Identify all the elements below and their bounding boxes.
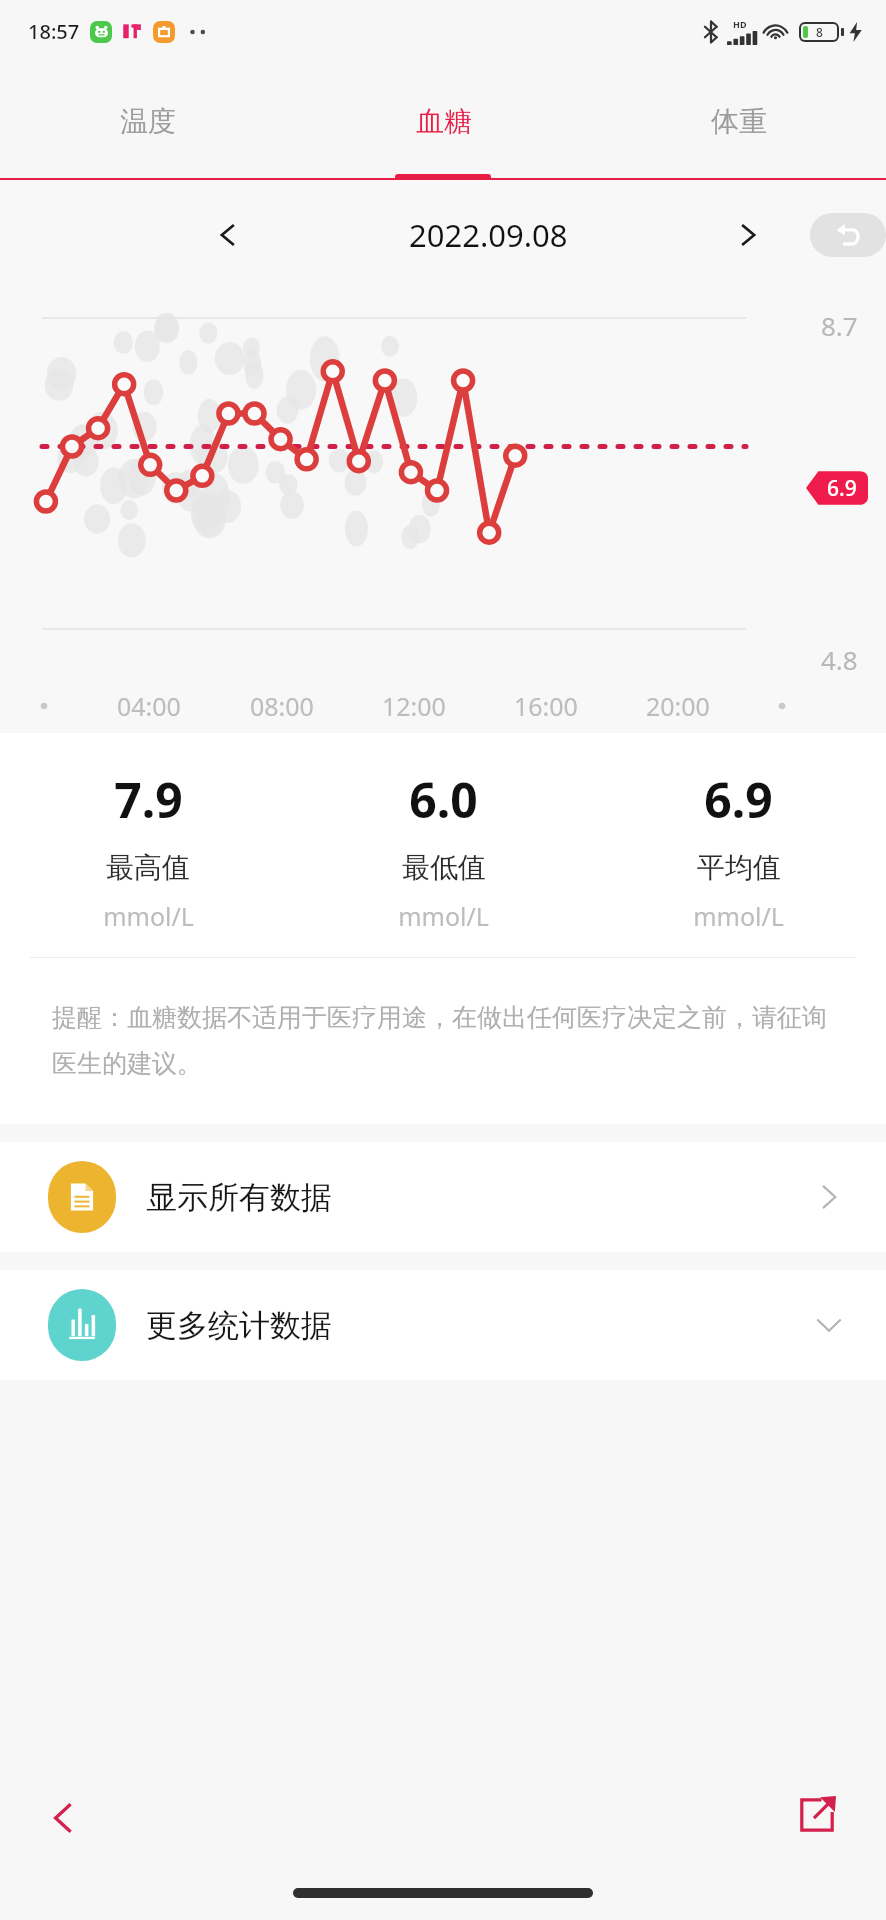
staticText: 6.0 bbox=[409, 767, 478, 832]
staticText: 体重 bbox=[711, 104, 767, 139]
staticText: 4.8 bbox=[821, 642, 858, 677]
staticText: 18:57 bbox=[28, 18, 80, 45]
staticText: 平均值 bbox=[697, 850, 781, 885]
staticText: 最低值 bbox=[402, 850, 486, 885]
button[interactable]: Reset bbox=[810, 213, 886, 257]
button[interactable]: Back bbox=[34, 1788, 94, 1848]
button[interactable]: Share bbox=[786, 1784, 848, 1846]
button[interactable]: Next day bbox=[720, 207, 776, 263]
staticText: 12:00 bbox=[382, 689, 446, 723]
staticText: 8 bbox=[816, 24, 823, 40]
staticText: mmol/L bbox=[398, 899, 489, 933]
button[interactable]: 更多统计数据 bbox=[0, 1270, 886, 1380]
staticText: 20:00 bbox=[646, 689, 710, 723]
staticText: 7.9 bbox=[114, 767, 183, 832]
staticText: 08:00 bbox=[250, 689, 314, 723]
button[interactable]: 显示所有数据 bbox=[0, 1142, 886, 1252]
staticText: 最高值 bbox=[106, 850, 190, 885]
staticText: HD bbox=[733, 18, 747, 30]
staticText: 2022.09.08 bbox=[409, 214, 568, 256]
button[interactable]: 温度 bbox=[0, 62, 296, 180]
button[interactable]: 血糖 bbox=[296, 62, 591, 180]
staticText: 显示所有数据 bbox=[146, 1178, 332, 1217]
staticText: 6.9 bbox=[827, 474, 857, 503]
staticText: 16:00 bbox=[514, 689, 578, 723]
staticText: 04:00 bbox=[117, 689, 181, 723]
staticText: 6.9 bbox=[704, 767, 773, 832]
button[interactable]: 体重 bbox=[591, 62, 886, 180]
staticText: 温度 bbox=[120, 104, 176, 139]
staticText: mmol/L bbox=[103, 899, 194, 933]
staticText: 提醒：血糖数据不适用于医疗用途，在做出任何医疗决定之前，请征询医生的建议。 bbox=[52, 1002, 846, 1080]
staticText: mmol/L bbox=[693, 899, 784, 933]
staticText: 更多统计数据 bbox=[146, 1306, 332, 1345]
staticText: 血糖 bbox=[416, 104, 472, 139]
button[interactable]: Previous day bbox=[200, 207, 256, 263]
staticText: 8.7 bbox=[821, 308, 858, 343]
